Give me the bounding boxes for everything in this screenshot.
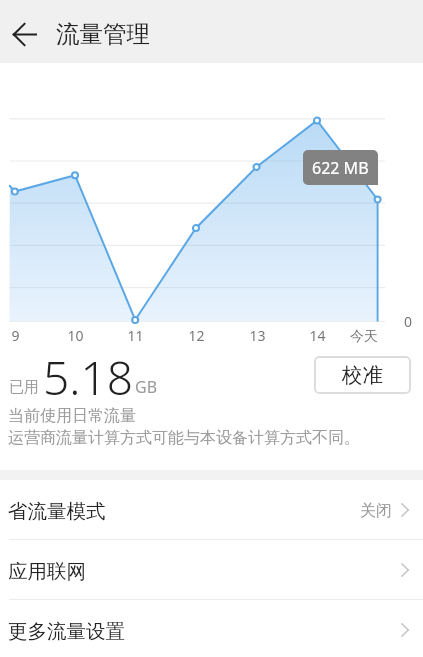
staticText: 应用联网 (8, 559, 86, 584)
button[interactable]: 校准 (314, 356, 411, 394)
staticText: 关闭 (360, 501, 392, 521)
staticText: 今天 (350, 328, 378, 346)
staticText: 流量管理 (56, 19, 150, 49)
staticText: 11 (127, 326, 144, 345)
staticText: 13 (249, 326, 266, 345)
button[interactable]: 省流量模式 (0, 480, 423, 540)
staticText: GB (135, 376, 158, 398)
staticText: 更多流量设置 (8, 619, 125, 644)
staticText: 运营商流量计算方式可能与本设备计算方式不同。 (8, 428, 360, 448)
staticText: 已用 (9, 378, 39, 397)
staticText: 10 (67, 326, 84, 345)
staticText: 5.18 (43, 346, 134, 409)
staticText: 9 (11, 326, 20, 345)
staticText: 0 (404, 312, 413, 331)
staticText: 当前使用日常流量 (8, 406, 136, 426)
button[interactable]: 应用联网 (0, 540, 423, 600)
staticText: 14 (309, 326, 326, 345)
staticText: 校准 (342, 362, 383, 388)
button[interactable]: 更多流量设置 (0, 600, 423, 657)
staticText: 12 (188, 326, 205, 345)
staticText: 622 MB (312, 157, 369, 179)
button[interactable]: Back (2, 12, 46, 56)
staticText: 省流量模式 (8, 499, 106, 524)
